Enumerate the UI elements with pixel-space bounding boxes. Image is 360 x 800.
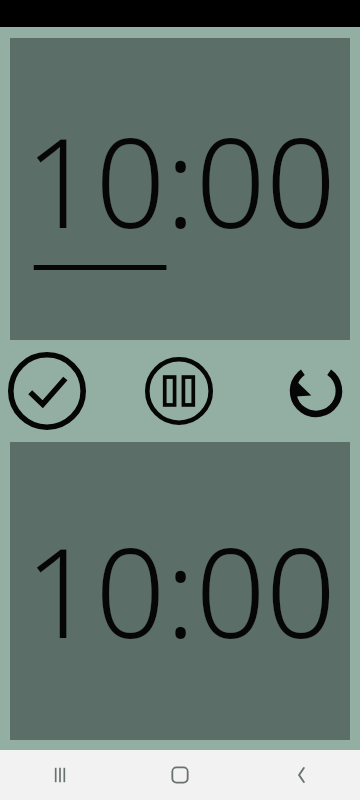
- button[interactable]: 10:00: [10, 442, 350, 740]
- button[interactable]: Done: [4, 348, 90, 434]
- button[interactable]: Reset: [278, 353, 354, 429]
- staticText: 10:00: [25, 97, 336, 265]
- button[interactable]: 10:00: [10, 38, 350, 340]
- button[interactable]: Pause: [141, 353, 217, 429]
- button[interactable]: Back: [240, 750, 360, 800]
- button[interactable]: Recents: [0, 750, 120, 800]
- staticText: 10:00: [25, 507, 336, 675]
- button[interactable]: Home: [120, 750, 240, 800]
